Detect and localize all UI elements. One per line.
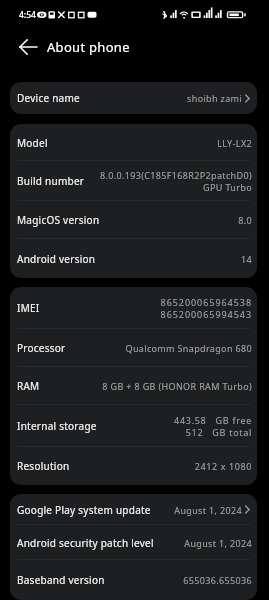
- button[interactable]: Android version: [10, 239, 257, 278]
- button[interactable]: Android security patch level: [10, 525, 257, 560]
- staticText: Android version: [17, 252, 96, 266]
- staticText: Qualcomm Snapdragon 680: [125, 342, 252, 354]
- button[interactable]: Baseband version: [10, 560, 257, 600]
- staticText: Internal storage: [17, 419, 97, 433]
- button[interactable]: Model: [10, 124, 257, 161]
- staticText: Resolution: [17, 459, 70, 473]
- staticText: Google Play system update: [17, 503, 151, 517]
- staticText: 8 GB + 8 GB (HONOR RAM Turbo): [102, 380, 252, 392]
- staticText: 4:54: [19, 9, 36, 21]
- staticText: 865200065994543: [160, 308, 252, 320]
- staticText: August 1, 2024: [184, 537, 252, 549]
- button[interactable]: Device name: [10, 82, 257, 114]
- staticText: Build number: [17, 174, 85, 188]
- staticText: 865200065964538: [160, 296, 252, 308]
- button[interactable]: Resolution: [10, 447, 257, 485]
- staticText: Baseband version: [17, 573, 105, 587]
- staticText: shoibh zami: [187, 92, 242, 104]
- staticText: RAM: [17, 379, 40, 393]
- staticText: 443.58 GB free: [174, 414, 252, 426]
- staticText: LLY-LX2: [217, 137, 252, 149]
- staticText: 512 GB total: [185, 426, 252, 438]
- button[interactable]: Build number: [10, 161, 257, 201]
- staticText: IMEI: [17, 301, 40, 315]
- staticText: About phone: [47, 38, 130, 56]
- staticText: 8.0: [238, 214, 252, 226]
- staticText: MagicOS version: [17, 213, 100, 227]
- staticText: 8.0.0.193(C185F168R2P2patchD0): [99, 169, 252, 181]
- staticText: Processor: [17, 341, 66, 355]
- button[interactable]: IMEI: [10, 287, 257, 329]
- staticText: Model: [17, 136, 48, 150]
- button[interactable]: Back: [13, 32, 43, 62]
- staticText: Android security patch level: [17, 536, 154, 550]
- button[interactable]: MagicOS version: [10, 201, 257, 239]
- staticText: Device name: [17, 91, 80, 105]
- staticText: 2412 x 1080: [194, 460, 252, 472]
- button[interactable]: RAM: [10, 367, 257, 405]
- button[interactable]: Google Play system update: [10, 494, 257, 525]
- staticText: 14: [241, 253, 252, 265]
- staticText: August 1, 2024: [174, 504, 242, 516]
- staticText: GPU Turbo: [203, 181, 252, 193]
- button[interactable]: Internal storage: [10, 405, 257, 447]
- button[interactable]: Processor: [10, 329, 257, 367]
- staticText: 655036.655036: [183, 574, 252, 586]
